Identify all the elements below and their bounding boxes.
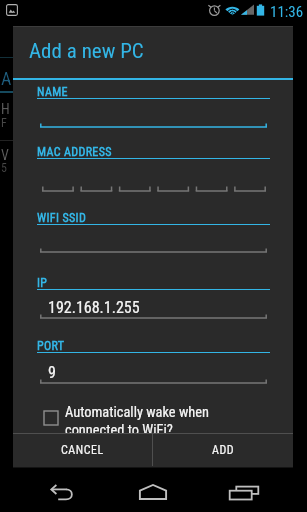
staticText: MAC ADDRESS: [37, 145, 112, 159]
button[interactable]: ADD: [153, 434, 293, 466]
staticText: NAME: [37, 85, 68, 99]
staticText: 9: [48, 363, 56, 382]
button[interactable]: Back: [34, 468, 94, 512]
staticText: 192.168.1.255: [48, 298, 140, 317]
staticText: PORT: [37, 339, 65, 353]
staticText: A: [1, 68, 12, 89]
staticText: V: [1, 147, 9, 163]
staticText: Add a new PC: [29, 39, 144, 64]
staticText: WIFI SSID: [37, 211, 87, 225]
button[interactable]: Automatically wake when connected to WiF…: [44, 404, 244, 433]
staticText: F: [1, 116, 7, 130]
button[interactable]: Home: [123, 468, 183, 512]
staticText: Automatically wake when connected to WiF…: [65, 404, 244, 433]
staticText: H: [1, 101, 10, 117]
button[interactable]: CANCEL: [13, 434, 152, 466]
staticText: ADD: [212, 443, 235, 457]
staticText: 5: [1, 161, 7, 175]
button[interactable]: Recent apps: [214, 468, 274, 512]
staticText: 11:36: [270, 3, 304, 21]
staticText: CANCEL: [61, 443, 104, 457]
staticText: IP: [37, 276, 48, 290]
